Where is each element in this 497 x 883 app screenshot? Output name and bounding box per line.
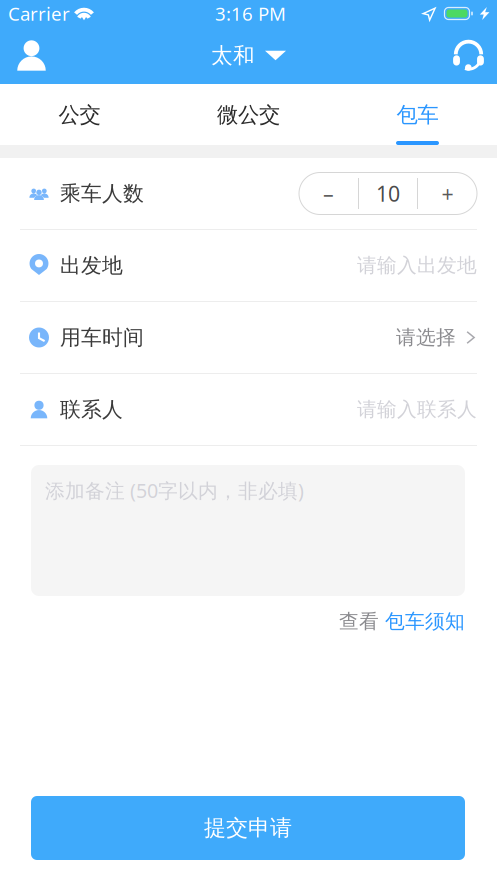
staticText: 包车 bbox=[396, 102, 438, 128]
button[interactable]: 出发地 bbox=[0, 230, 497, 302]
staticText: 请输入联系人 bbox=[357, 397, 477, 422]
staticText: + bbox=[441, 179, 453, 208]
staticText: 请选择 bbox=[396, 325, 456, 350]
staticText: 10 bbox=[376, 179, 400, 208]
button[interactable]: 包车 bbox=[342, 84, 492, 145]
staticText: 用车时间 bbox=[60, 324, 144, 351]
button[interactable]: 联系人 bbox=[0, 374, 497, 446]
staticText: 查看 bbox=[339, 609, 385, 634]
staticText: 微公交 bbox=[217, 102, 280, 128]
staticText: 包车须知 bbox=[385, 609, 465, 634]
staticText: 出发地 bbox=[60, 252, 123, 279]
staticText: 3:16 PM bbox=[215, 1, 286, 26]
button[interactable]: 微公交 bbox=[173, 84, 323, 145]
staticText: 联系人 bbox=[60, 396, 123, 423]
button[interactable]: Increase bbox=[418, 172, 477, 214]
staticText: 提交申请 bbox=[204, 814, 292, 842]
button[interactable]: Account bbox=[0, 27, 63, 84]
button[interactable]: 公交 bbox=[4, 84, 154, 145]
button[interactable]: 添加备注 (50字以内，非必填) bbox=[0, 446, 497, 596]
button[interactable]: 用车时间 bbox=[0, 302, 497, 374]
button[interactable]: 太和 bbox=[199, 32, 298, 78]
staticText: 请输入出发地 bbox=[357, 253, 477, 278]
staticText: 添加备注 (50字以内，非必填) bbox=[45, 477, 304, 504]
staticText: 公交 bbox=[58, 102, 100, 128]
button[interactable]: 包车须知 bbox=[385, 609, 465, 634]
staticText: 乘车人数 bbox=[60, 180, 144, 207]
staticText: Carrier bbox=[8, 1, 70, 26]
button[interactable]: Customer service bbox=[440, 27, 497, 84]
button[interactable]: Decrease bbox=[299, 172, 358, 214]
staticText: 太和 bbox=[211, 42, 255, 69]
button[interactable]: 提交申请 bbox=[0, 796, 497, 883]
staticText: – bbox=[323, 179, 334, 208]
